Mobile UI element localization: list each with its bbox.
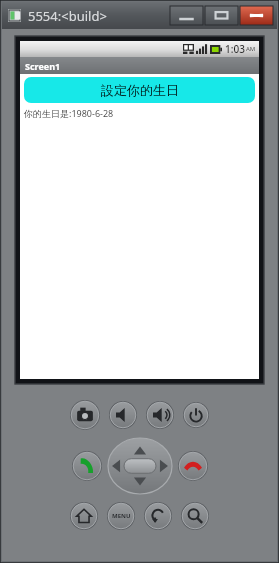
button[interactable]: D-pad (108, 438, 172, 494)
button[interactable]: Search (181, 502, 209, 530)
staticText: AM (246, 45, 256, 53)
staticText: MENU (112, 512, 131, 520)
button[interactable]: Back (144, 502, 172, 530)
button[interactable]: Volume up (146, 401, 174, 429)
button[interactable]: Minimize (170, 6, 203, 25)
button[interactable]: Volume down (109, 401, 137, 429)
button[interactable]: Home (70, 502, 98, 530)
button[interactable]: Power (183, 402, 209, 428)
staticText: Screen1 (25, 60, 61, 72)
button[interactable]: Close (240, 6, 273, 25)
staticText: 1:03 (225, 42, 245, 56)
button[interactable]: 設定你的生日 (24, 77, 255, 103)
staticText: 5554:<build> (28, 7, 107, 25)
button[interactable]: Maximize (205, 6, 238, 25)
button[interactable]: Camera (70, 400, 100, 430)
staticText: 設定你的生日 (101, 82, 179, 98)
button[interactable]: Menu (107, 502, 135, 530)
button[interactable]: Call (72, 451, 102, 481)
staticText: 你的生日是:1980-6-28 (24, 107, 114, 119)
button[interactable]: End call (178, 451, 208, 481)
